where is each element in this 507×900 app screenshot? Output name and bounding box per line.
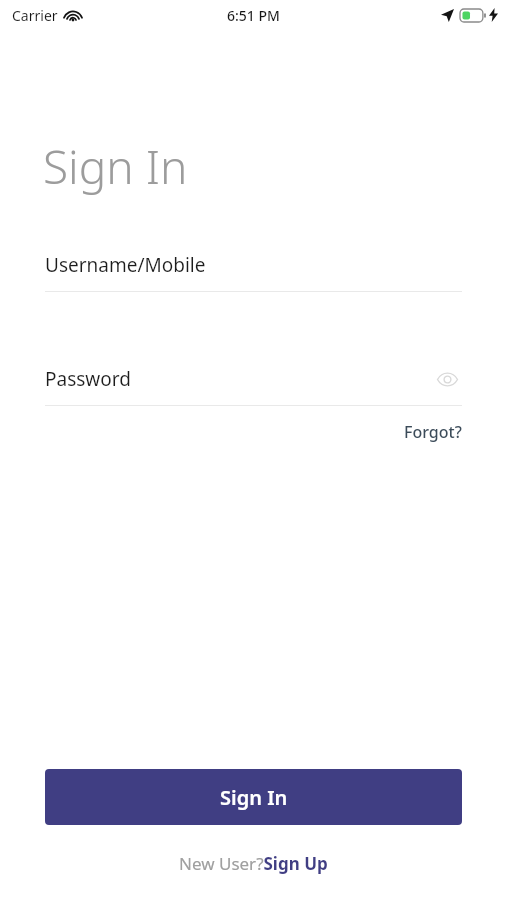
button[interactable]: Show password — [432, 364, 462, 394]
staticText: Forgot? — [404, 421, 462, 443]
button[interactable]: Forgot? — [401, 418, 465, 446]
staticText: Sign In — [220, 784, 288, 811]
staticText: Sign In — [43, 135, 188, 198]
staticText: Username/Mobile — [45, 252, 206, 278]
staticText: 6:51 PM — [227, 6, 280, 25]
staticText: Carrier — [12, 6, 58, 25]
staticText: New User?Sign Up — [179, 852, 328, 875]
button[interactable]: Sign In — [45, 769, 462, 825]
staticText: Password — [45, 366, 131, 392]
button[interactable]: New User?Sign Up — [174, 847, 333, 880]
